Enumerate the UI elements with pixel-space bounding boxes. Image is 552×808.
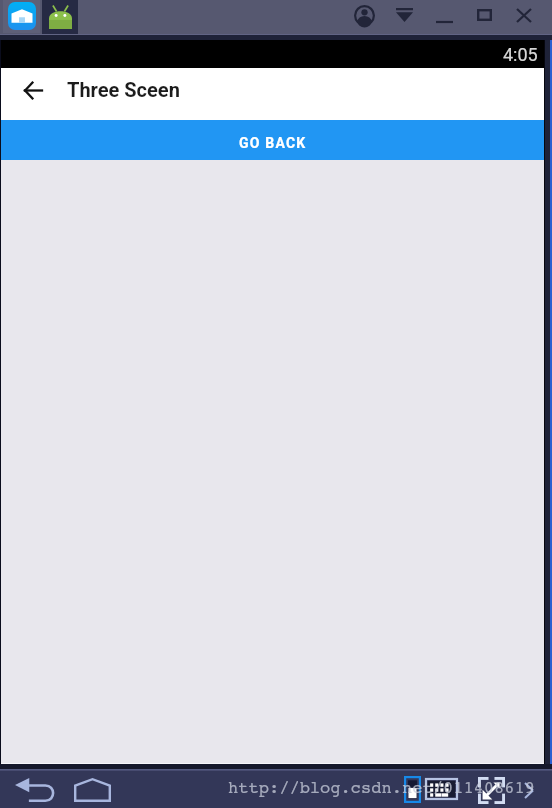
button[interactable]: Close [510, 1, 538, 29]
button[interactable]: GO BACK [1, 120, 544, 160]
button[interactable]: Minimize [430, 1, 458, 29]
staticText: GO BACK [239, 135, 307, 151]
button[interactable]: Device manager [3, 0, 40, 33]
button[interactable]: Account [350, 1, 378, 29]
button[interactable]: Maximize [470, 1, 498, 29]
staticText: 4:05 [503, 44, 538, 65]
button[interactable]: Home [68, 773, 116, 807]
button[interactable]: Keyboard [421, 772, 461, 806]
button[interactable]: Navigate up [9, 66, 57, 114]
button[interactable]: Collapse [391, 2, 417, 28]
button[interactable]: Emulator tab [42, 0, 78, 34]
staticText: http://blog.csdn.net/011408619 [228, 778, 536, 798]
button[interactable]: Zoom [475, 773, 507, 807]
button[interactable]: More [517, 773, 541, 807]
staticText: Three Sceen [67, 78, 180, 101]
button[interactable]: Screenshot [399, 772, 425, 806]
button[interactable]: Back [10, 773, 58, 807]
